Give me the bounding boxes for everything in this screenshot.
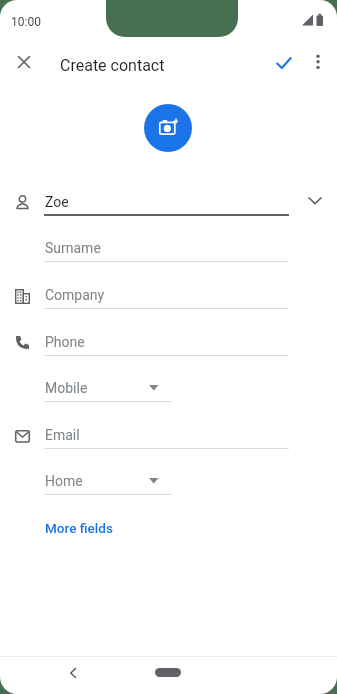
staticText: Email <box>45 427 80 443</box>
staticText: Surname <box>45 240 101 256</box>
button[interactable]: Mobile <box>44 377 172 402</box>
staticText: Home <box>45 473 83 489</box>
button[interactable] <box>144 104 192 152</box>
staticText: Create contact <box>60 56 165 75</box>
button[interactable]: Surname <box>44 237 289 262</box>
button[interactable] <box>58 658 88 688</box>
button[interactable]: Home <box>44 470 172 495</box>
button[interactable]: Email <box>44 424 289 449</box>
button[interactable]: Phone <box>44 331 289 356</box>
button[interactable]: Company <box>44 284 289 309</box>
staticText: Phone <box>45 334 85 350</box>
button[interactable] <box>271 50 297 76</box>
staticText: Mobile <box>45 380 88 396</box>
button[interactable] <box>306 50 330 74</box>
button[interactable] <box>300 190 330 210</box>
staticText: Company <box>45 287 105 303</box>
button[interactable] <box>10 48 38 76</box>
staticText: 10:00 <box>11 15 41 29</box>
button[interactable] <box>155 668 181 677</box>
button[interactable]: Zoe <box>44 190 289 216</box>
staticText: Zoe <box>45 194 69 210</box>
button[interactable]: More fields <box>44 514 112 538</box>
staticText: More fields <box>45 520 113 536</box>
